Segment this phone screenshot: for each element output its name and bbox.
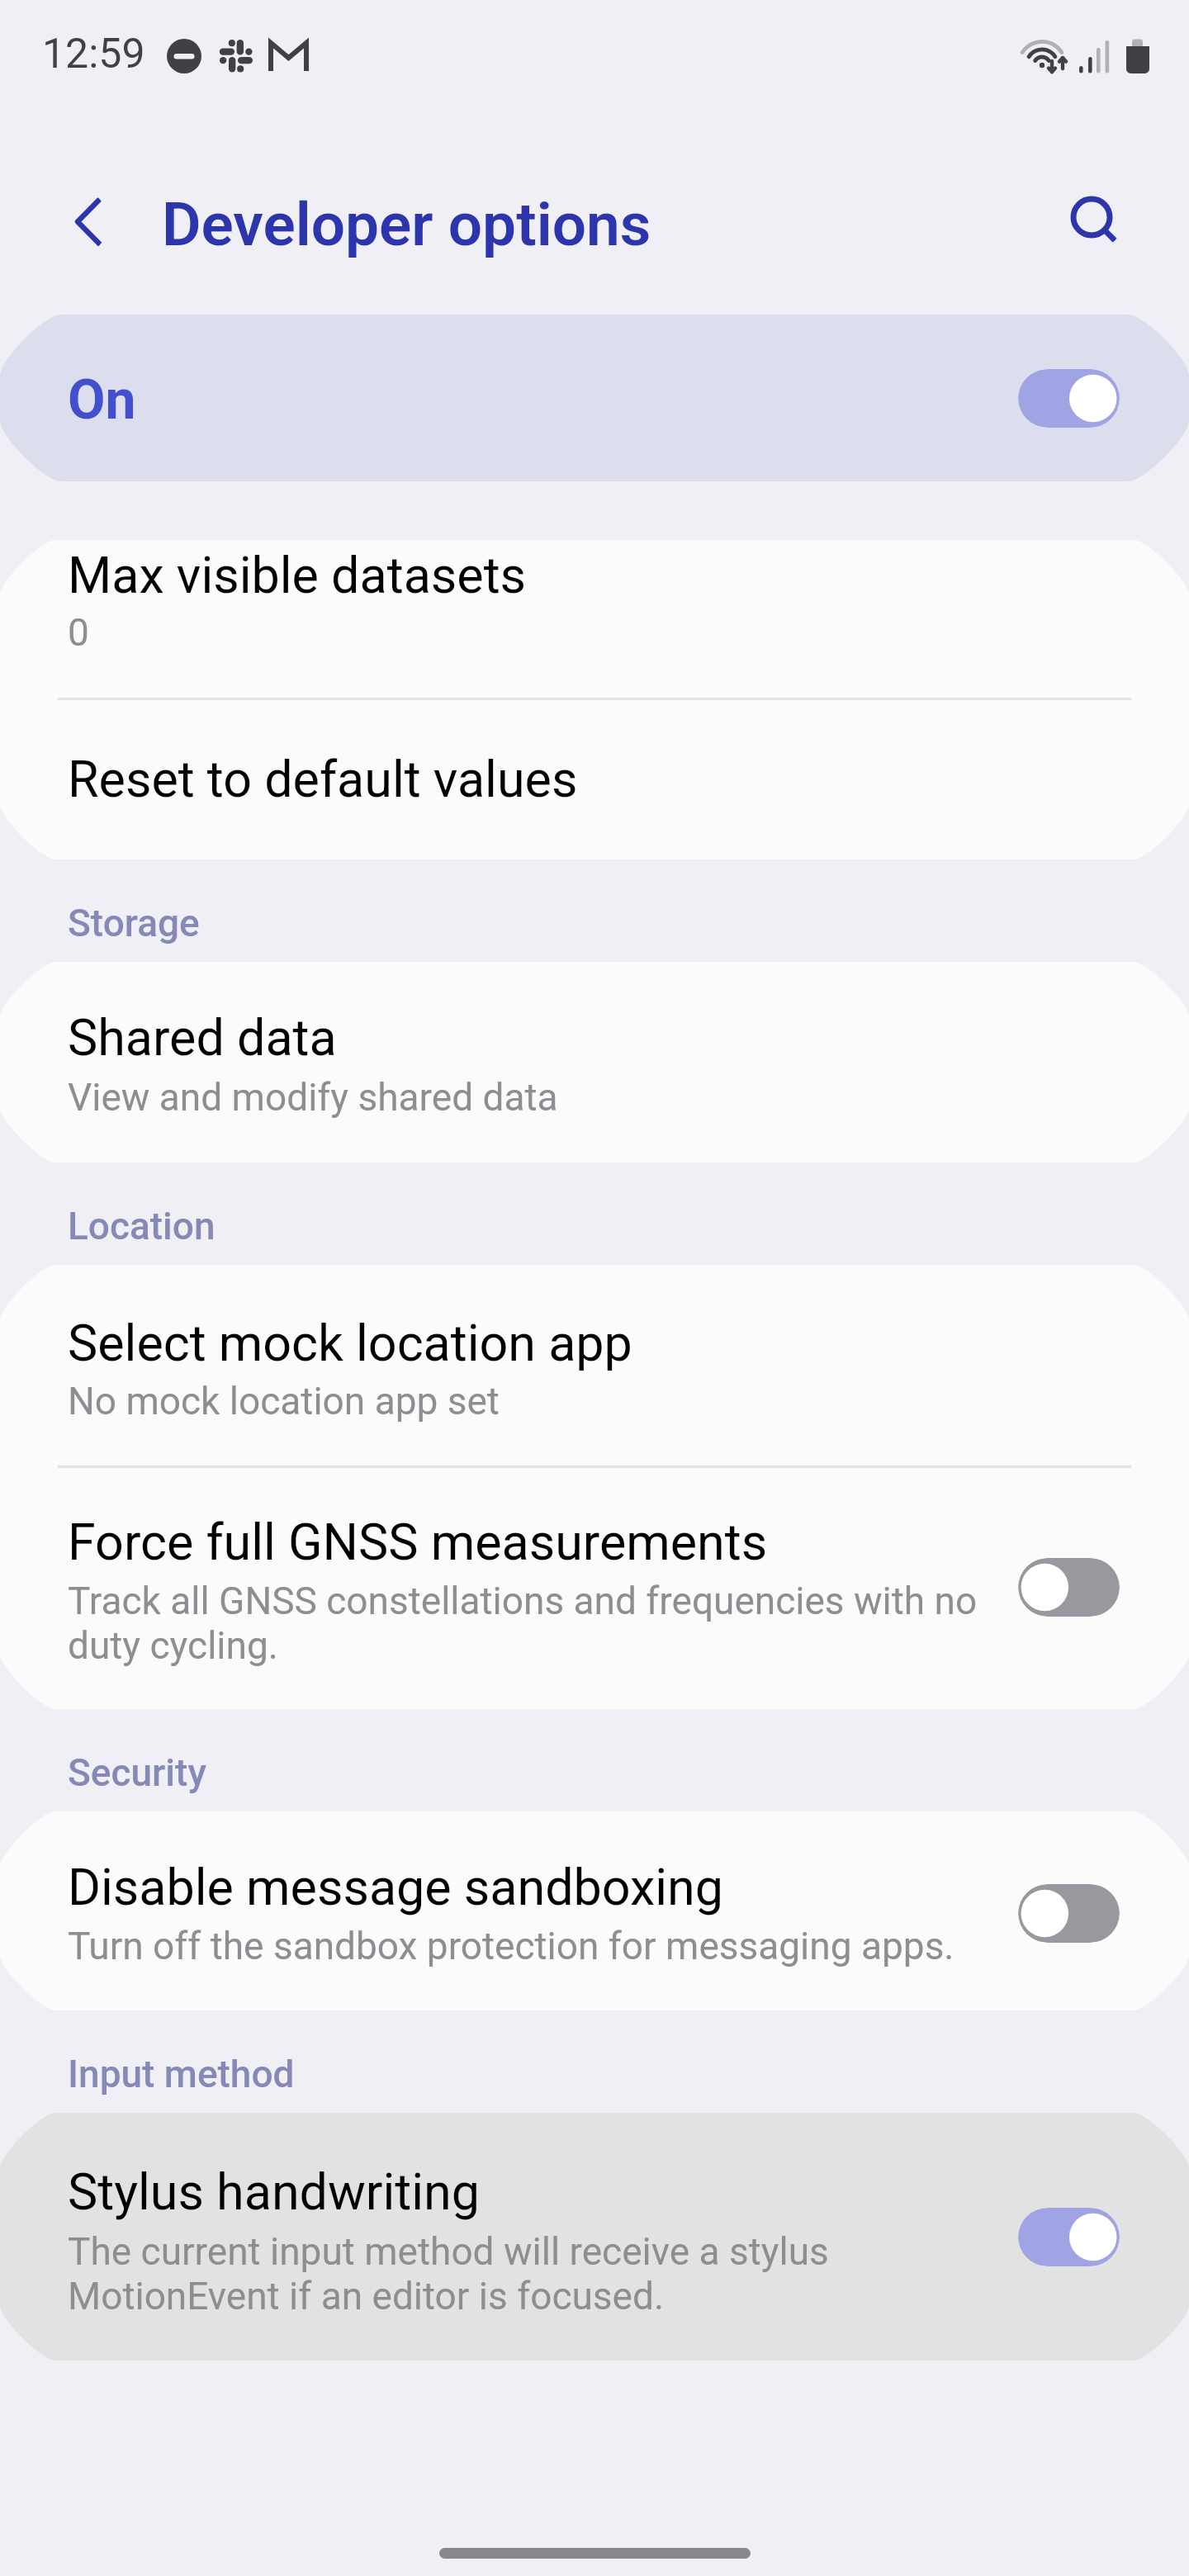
staticText: Input method <box>68 2052 295 2096</box>
staticText: On <box>68 368 136 432</box>
staticText: Force full GNSS measurements <box>68 1513 1017 1571</box>
staticText: Max visible datasets <box>68 546 1104 604</box>
button[interactable]: Search <box>1059 184 1125 250</box>
staticText: 0 <box>68 610 1104 655</box>
button[interactable]: Force full GNSS measurements, off <box>1018 1558 1120 1617</box>
staticText: Disable message sandboxing <box>68 1858 1017 1916</box>
staticText: Reset to default values <box>68 750 1104 808</box>
staticText: Location <box>68 1204 216 1248</box>
staticText: The current input method will receive a … <box>68 2229 1017 2318</box>
button[interactable]: Navigate up <box>43 189 109 255</box>
staticText: View and modify shared data <box>68 1075 1104 1120</box>
staticText: Track all GNSS constellations and freque… <box>68 1579 1017 1668</box>
staticText: Storage <box>68 901 200 945</box>
button[interactable]: Disable message sandboxing <box>0 1811 1189 2010</box>
button[interactable]: Stylus handwriting, on <box>1018 2208 1120 2266</box>
button[interactable]: Shared data <box>0 962 1189 1163</box>
button[interactable]: Stylus handwriting <box>0 2113 1189 2361</box>
button[interactable]: Reset to default values <box>0 700 1189 859</box>
staticText: Developer options <box>162 189 651 260</box>
button[interactable]: Disable message sandboxing, off <box>1018 1884 1120 1943</box>
button[interactable]: Select mock location app <box>0 1265 1189 1466</box>
button[interactable]: Max visible datasets <box>0 540 1189 698</box>
button[interactable]: Force full GNSS measurements <box>0 1468 1189 1709</box>
staticText: Stylus handwriting <box>68 2162 1017 2221</box>
staticText: Shared data <box>68 1008 1104 1067</box>
staticText: Select mock location app <box>68 1314 1104 1372</box>
button[interactable]: Developer options, on <box>1018 369 1120 428</box>
staticText: No mock location app set <box>68 1379 1104 1423</box>
button[interactable]: On <box>0 315 1189 481</box>
staticText: Security <box>68 1750 206 1795</box>
staticText: Turn off the sandbox protection for mess… <box>68 1924 1017 1968</box>
staticText: 12:59 <box>42 30 145 78</box>
